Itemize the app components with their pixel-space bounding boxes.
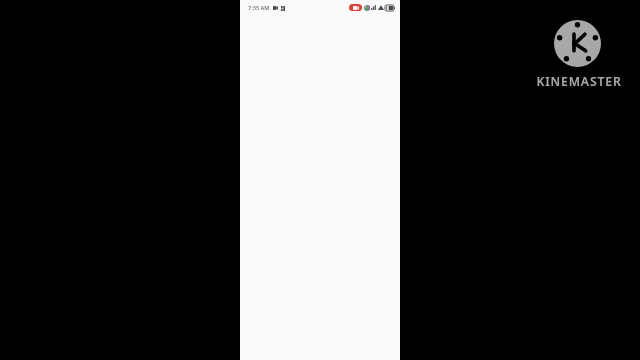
other: Screen recording active <box>273 6 278 10</box>
other: Battery <box>385 5 395 11</box>
other: Wi-Fi <box>378 5 384 10</box>
staticText: 7:35 AM <box>248 4 270 12</box>
other: App status <box>364 5 370 11</box>
other: Recording indicator <box>349 4 362 11</box>
staticText: KINEMASTER <box>536 73 622 90</box>
other: KineMaster logo <box>554 20 601 67</box>
other: Mobile signal <box>371 5 376 10</box>
other: Split screen <box>281 6 285 11</box>
